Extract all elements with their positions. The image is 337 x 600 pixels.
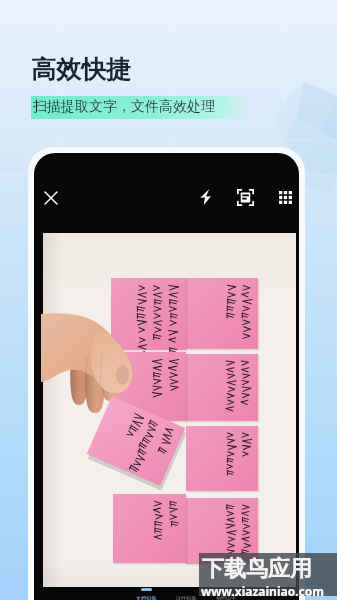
staticText: 高效快捷 bbox=[31, 54, 131, 85]
button[interactable]: Scan document bbox=[234, 186, 256, 208]
button[interactable]: Close bbox=[40, 187, 62, 209]
staticText: 下载鸟应用 bbox=[202, 555, 312, 583]
staticText: 扫描提取文字，文件高效处理 bbox=[33, 98, 215, 116]
button[interactable]: 拍照识字 bbox=[206, 587, 246, 600]
staticText: 文档扫描 bbox=[136, 595, 156, 600]
staticText: 证件扫描 bbox=[176, 595, 196, 600]
button[interactable]: Flash bbox=[194, 186, 216, 208]
button[interactable]: 证件扫描 bbox=[166, 587, 206, 600]
button[interactable]: 文档扫描 bbox=[126, 587, 166, 600]
staticText: www.xiazainiao.com bbox=[201, 583, 324, 599]
button[interactable]: Gallery bbox=[274, 186, 296, 208]
staticText: 拍照识字 bbox=[216, 595, 236, 600]
